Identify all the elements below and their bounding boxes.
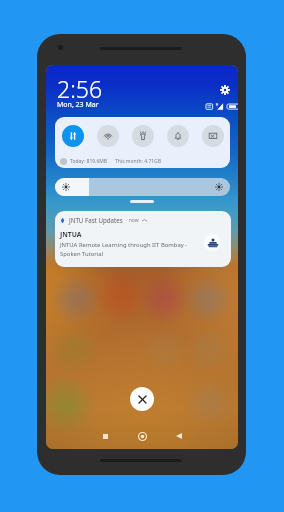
button[interactable]: Today: 819.6MB bbox=[55, 154, 230, 168]
staticText: · now bbox=[126, 217, 139, 224]
staticText: JNTUA bbox=[60, 230, 82, 239]
staticText: This month: 4.71GB bbox=[115, 158, 161, 165]
button[interactable]: Mobile data bbox=[62, 125, 84, 147]
button[interactable]: JNTU Fast Updates bbox=[55, 211, 231, 267]
staticText: JNTU Fast Updates bbox=[69, 216, 123, 224]
button[interactable]: Drag handle bbox=[130, 200, 154, 203]
staticText: Mon, 23 Mar bbox=[57, 100, 99, 110]
button[interactable]: Recents bbox=[92, 423, 118, 449]
button[interactable]: Cast screen bbox=[202, 125, 224, 147]
staticText: Today: 819.6MB bbox=[70, 158, 108, 165]
button[interactable]: Home bbox=[129, 423, 155, 449]
button[interactable]: Wi-Fi bbox=[97, 125, 119, 147]
staticText: 2:56 bbox=[57, 73, 103, 104]
button[interactable]: Close bbox=[130, 387, 154, 411]
button[interactable]: Back bbox=[166, 423, 192, 449]
staticText: JNTUA Remote Learning through IIT Bombay… bbox=[60, 241, 188, 257]
button[interactable]: Brightness bbox=[55, 178, 230, 196]
button[interactable]: Flashlight bbox=[132, 125, 154, 147]
button[interactable]: Settings bbox=[217, 82, 233, 98]
button[interactable]: Do not disturb bbox=[167, 125, 189, 147]
